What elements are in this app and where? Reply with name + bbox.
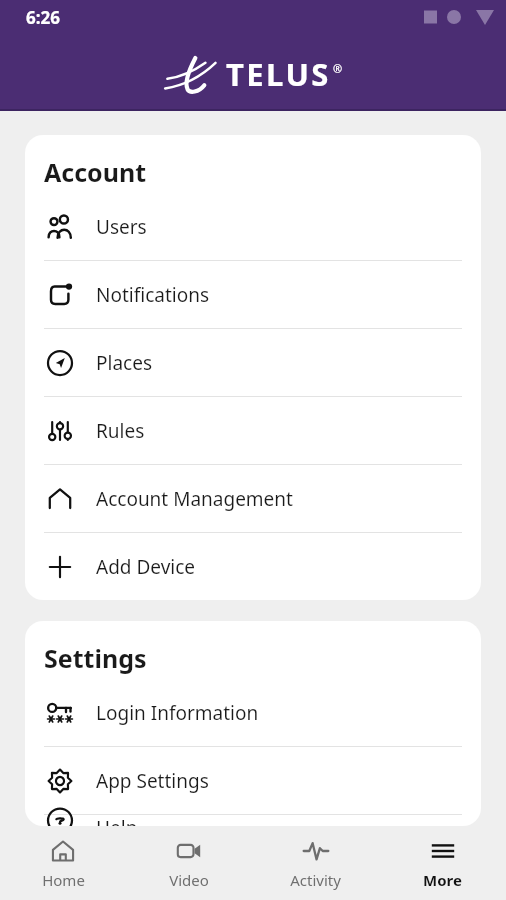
button[interactable]: Notifications [25,261,481,328]
button[interactable]: Help [25,815,481,826]
staticText: Home [42,870,85,890]
button[interactable]: Activity [252,826,379,900]
staticText: Rules [96,418,145,444]
staticText: Login Information [96,700,259,726]
button[interactable]: Account Management [25,465,481,532]
staticText: Help [96,815,138,826]
button[interactable]: Rules [25,397,481,464]
staticText: Activity [290,870,341,890]
staticText: 6:26 [26,6,60,29]
staticText: More [423,870,462,890]
staticText: Users [96,214,147,240]
button[interactable]: App Settings [25,747,481,814]
staticText: ® [333,61,343,76]
staticText: Places [96,350,152,376]
button[interactable]: Add Device [25,533,481,600]
button[interactable]: Users [25,193,481,260]
button[interactable]: Login Information [25,679,481,746]
staticText: Add Device [96,554,196,580]
staticText: Settings [44,641,147,675]
staticText: TELUS [226,53,331,95]
button[interactable]: Video [126,826,252,900]
staticText: Account [44,155,147,189]
button[interactable]: More [379,826,506,900]
staticText: Account Management [96,486,293,512]
button[interactable]: Places [25,329,481,396]
staticText: Video [169,870,209,890]
staticText: Notifications [96,282,210,308]
button[interactable]: Home [0,826,126,900]
staticText: App Settings [96,768,209,794]
